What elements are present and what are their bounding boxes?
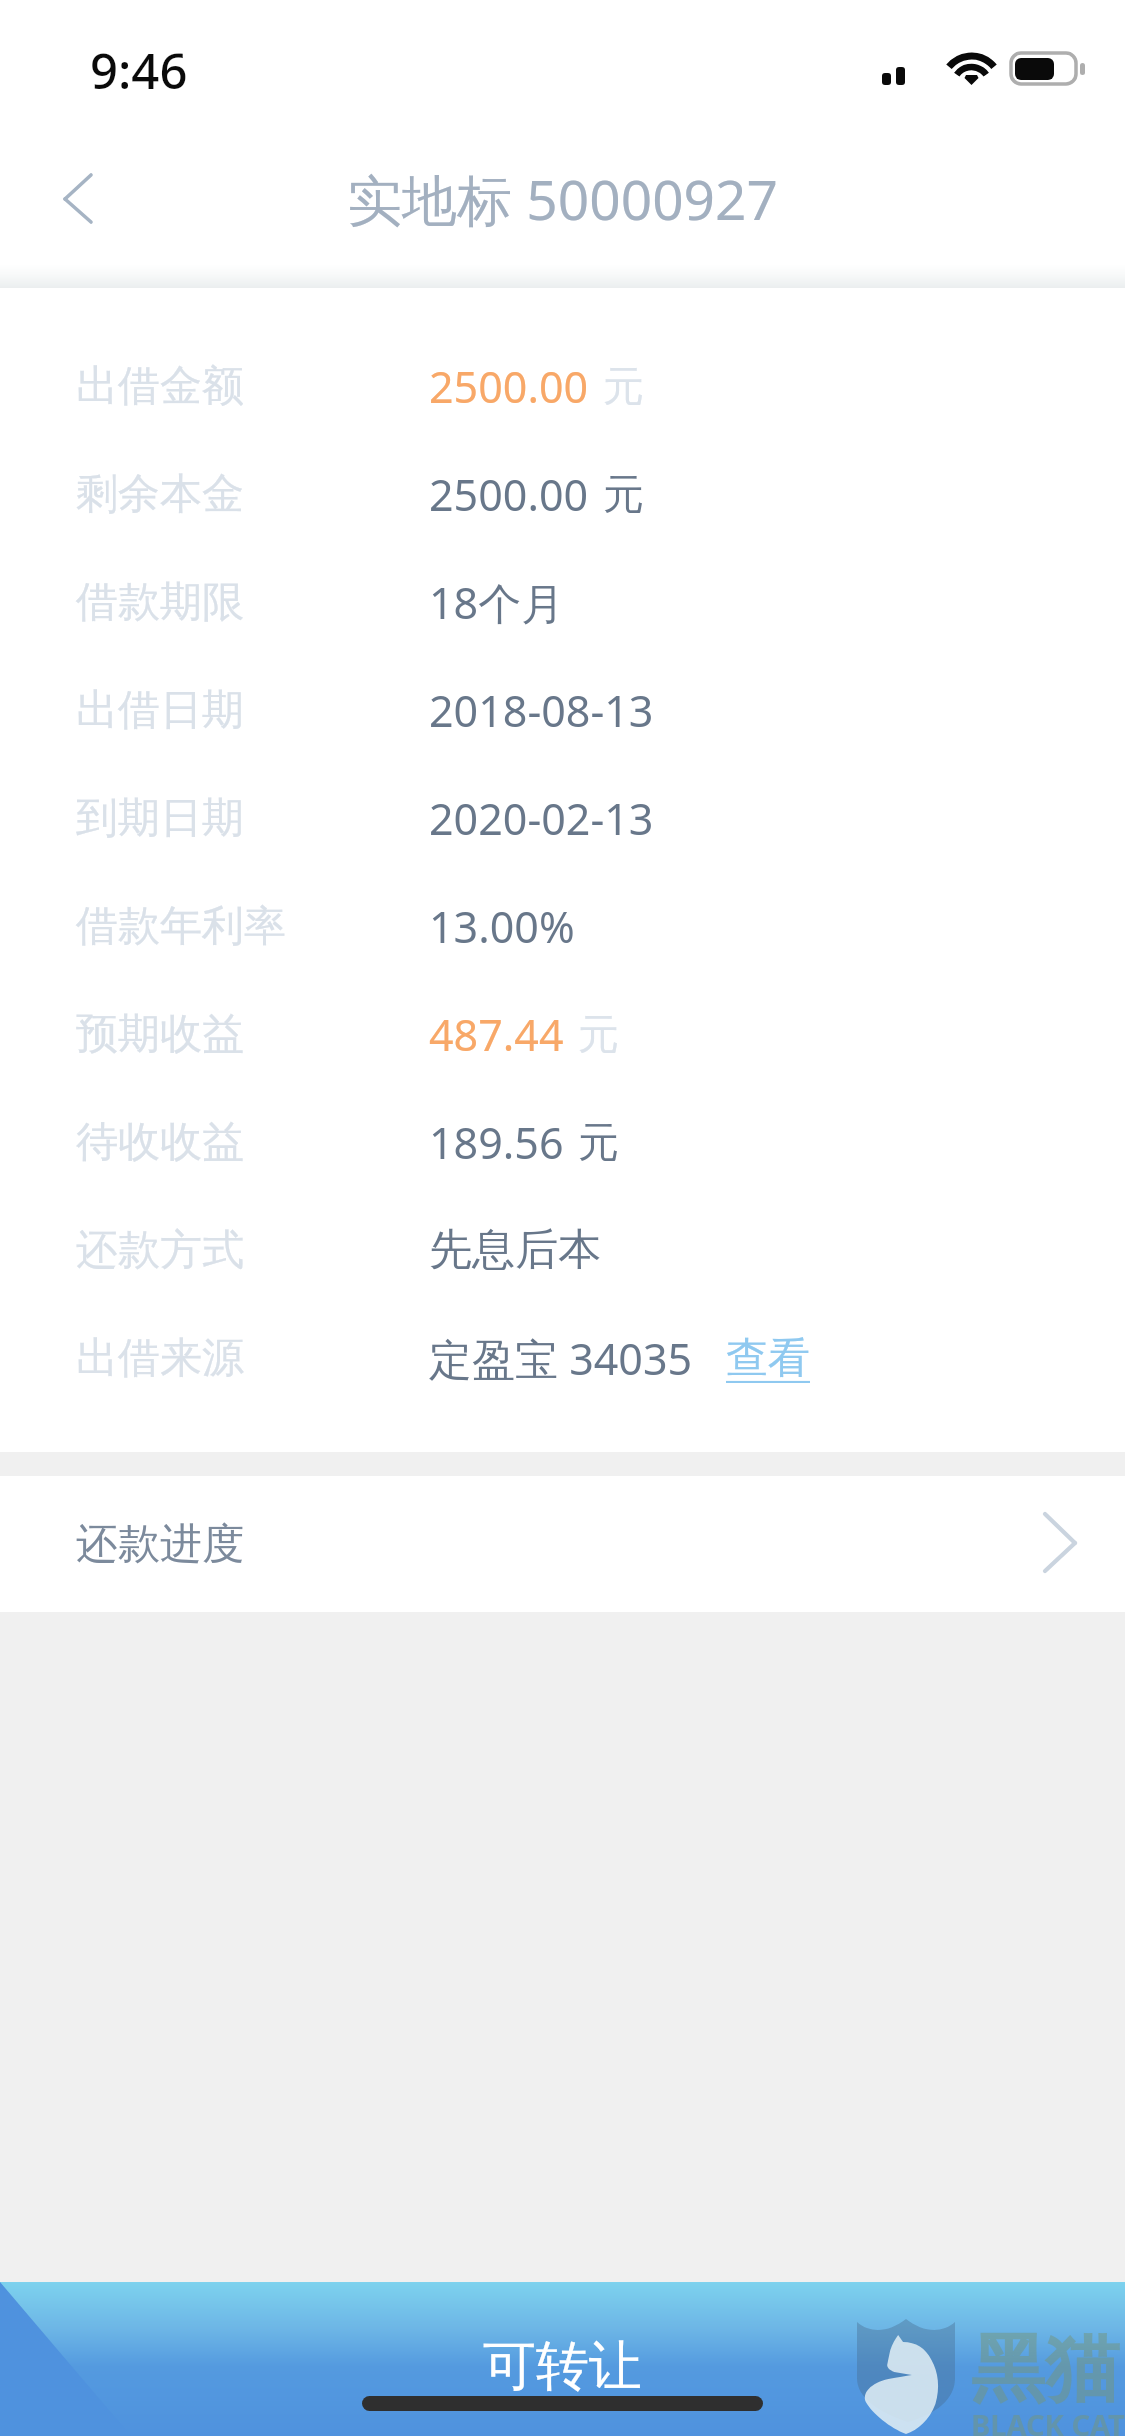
staticText: 元 <box>578 1117 619 1169</box>
staticText: 出借来源 <box>76 1332 244 1385</box>
staticText: 先息后本 <box>429 1223 601 1277</box>
staticText: 剩余本金 <box>76 468 244 521</box>
staticText: 2500.00 <box>429 357 589 416</box>
staticText: 出借金额 <box>76 360 244 413</box>
staticText: 借款年利率 <box>76 900 286 953</box>
staticText: 2500.00 <box>429 465 589 524</box>
staticText: 出借日期 <box>76 684 244 737</box>
staticText: 黑猫 <box>971 2323 1119 2416</box>
button[interactable]: Back <box>0 132 150 264</box>
staticText: 元 <box>578 1009 619 1061</box>
staticText: 13.00% <box>429 897 575 956</box>
staticText: 487.44 <box>429 1005 564 1064</box>
staticText: 待收收益 <box>76 1116 244 1169</box>
staticText: 18个月 <box>429 573 565 632</box>
staticText: 定盈宝 34035 <box>429 1329 693 1388</box>
staticText: 还款方式 <box>76 1224 244 1277</box>
staticText: 借款期限 <box>76 576 244 629</box>
staticText: 可转让 <box>483 2333 642 2400</box>
button[interactable]: 还款进度 <box>0 1476 1125 1612</box>
staticText: 实地标 50000927 <box>347 161 778 236</box>
staticText: BLACK CAT <box>971 2405 1125 2436</box>
button[interactable]: 查看 <box>708 1318 828 1399</box>
staticText: 还款进度 <box>76 1518 244 1571</box>
staticText: 2020-02-13 <box>429 789 654 848</box>
staticText: 2018-08-13 <box>429 681 654 740</box>
staticText: 189.56 <box>429 1113 564 1172</box>
staticText: 预期收益 <box>76 1008 244 1061</box>
staticText: 到期日期 <box>76 792 244 845</box>
staticText: 查看 <box>726 1332 810 1385</box>
staticText: 元 <box>603 469 644 521</box>
button[interactable]: 黑猫 <box>0 2282 1125 2436</box>
staticText: 9:46 <box>90 37 188 104</box>
staticText: 元 <box>603 361 644 413</box>
